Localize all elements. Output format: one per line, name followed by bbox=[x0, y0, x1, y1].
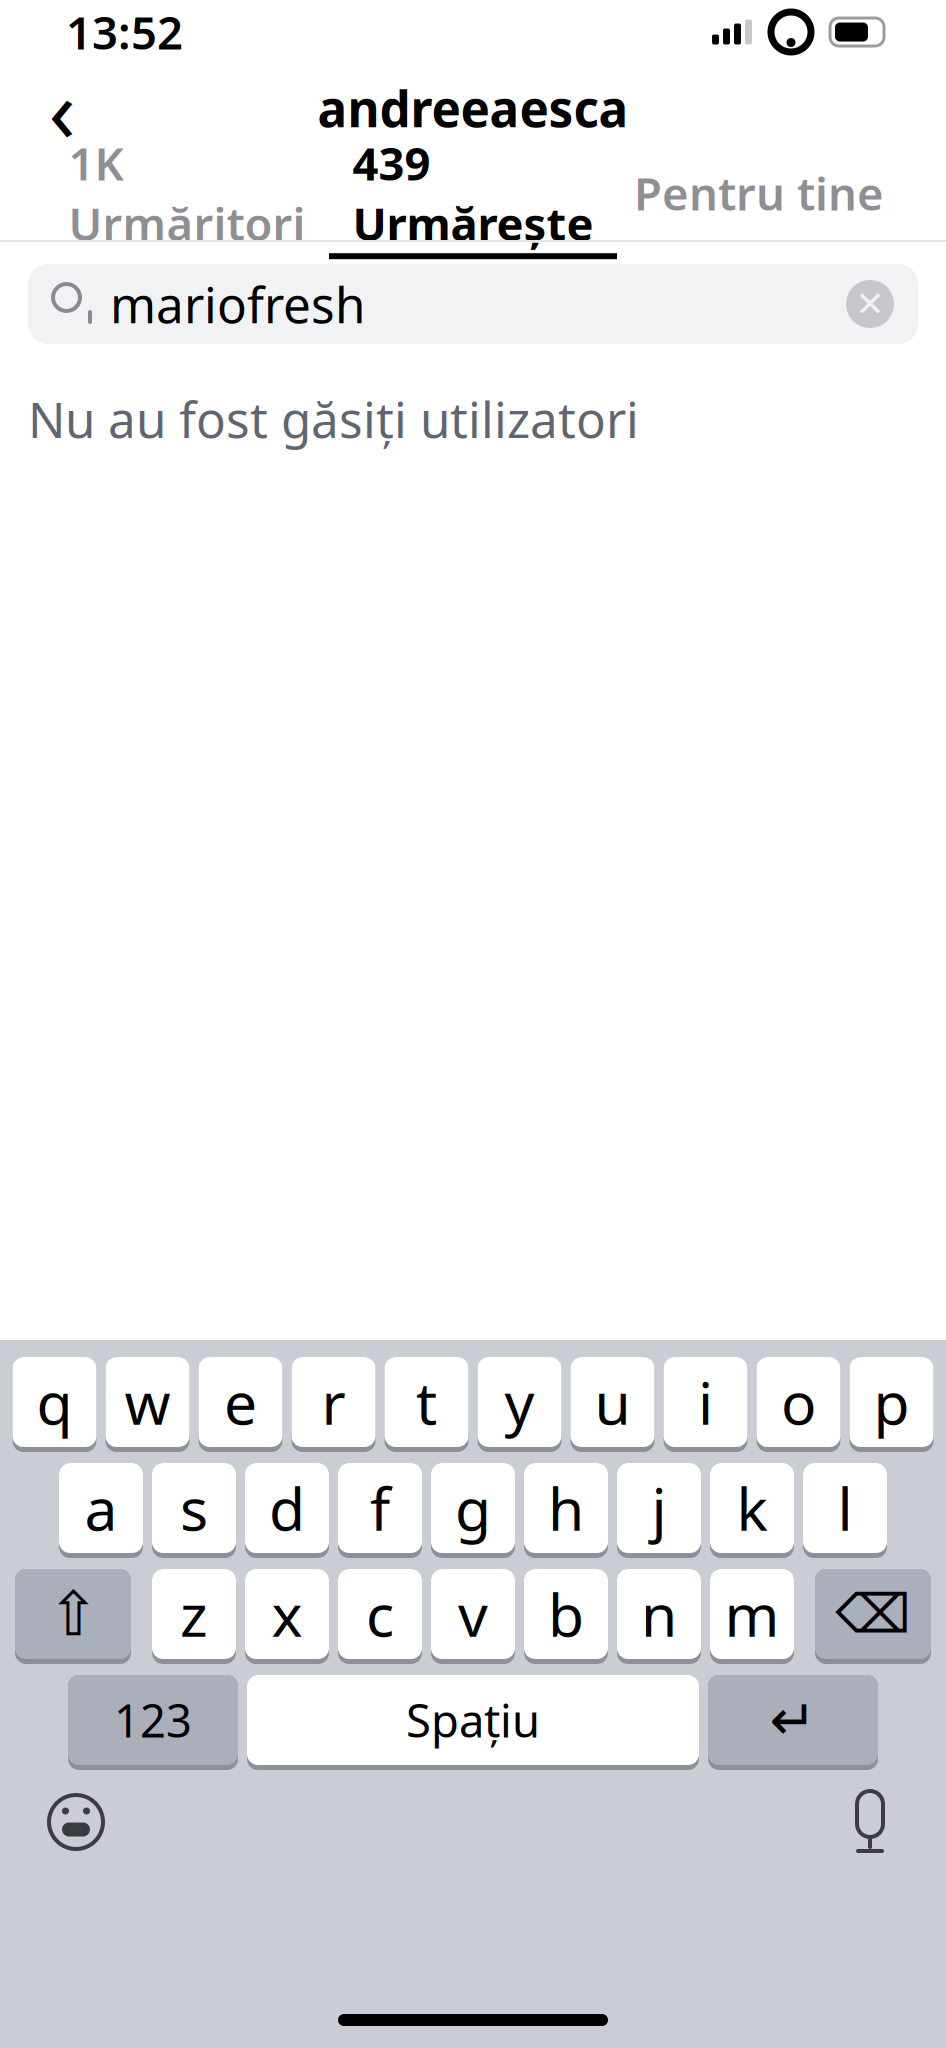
staticText: 1K Urmăritori bbox=[68, 133, 305, 253]
staticText: p bbox=[873, 1363, 909, 1441]
button[interactable]: Numbers bbox=[68, 1675, 238, 1770]
staticText: f bbox=[370, 1469, 390, 1547]
button[interactable]: Delete bbox=[815, 1569, 931, 1664]
button[interactable]: o bbox=[756, 1357, 840, 1452]
button[interactable]: d bbox=[245, 1463, 329, 1558]
staticText: g bbox=[455, 1469, 491, 1547]
button[interactable]: x bbox=[245, 1569, 329, 1664]
button[interactable]: Return bbox=[708, 1675, 878, 1770]
staticText: 13:52 bbox=[66, 2, 183, 62]
staticText: e bbox=[224, 1363, 257, 1441]
staticText: Nu au fost găsiți utilizatori bbox=[28, 386, 639, 451]
staticText: o bbox=[781, 1363, 816, 1441]
staticText: i bbox=[698, 1363, 713, 1441]
staticText: v bbox=[458, 1575, 488, 1653]
button[interactable]: Back bbox=[14, 66, 110, 150]
staticText: mariofresh bbox=[110, 271, 365, 337]
button[interactable]: f bbox=[338, 1463, 422, 1558]
button[interactable]: Dictation bbox=[826, 1778, 914, 1866]
button[interactable]: g bbox=[431, 1463, 515, 1558]
staticText: ✕ bbox=[855, 284, 884, 324]
button[interactable]: s bbox=[152, 1463, 236, 1558]
staticText: t bbox=[416, 1363, 437, 1441]
staticText: ‹ bbox=[48, 50, 75, 166]
button[interactable]: y bbox=[477, 1357, 561, 1452]
button[interactable]: r bbox=[291, 1357, 375, 1452]
staticText: s bbox=[180, 1469, 208, 1547]
staticText: l bbox=[837, 1469, 852, 1547]
button[interactable]: Pentru tine bbox=[617, 152, 901, 240]
button[interactable]: 1K Urmăritori bbox=[45, 152, 329, 240]
staticText: z bbox=[180, 1575, 208, 1653]
staticText: b bbox=[548, 1575, 584, 1653]
staticText: d bbox=[269, 1469, 305, 1547]
button[interactable]: w bbox=[105, 1357, 189, 1452]
button[interactable]: i bbox=[663, 1357, 747, 1452]
staticText: 123 bbox=[114, 1690, 192, 1750]
staticText: c bbox=[366, 1575, 394, 1653]
button[interactable]: a bbox=[59, 1463, 143, 1558]
button[interactable]: Space bbox=[247, 1675, 699, 1770]
button[interactable]: z bbox=[152, 1569, 236, 1664]
button[interactable]: l bbox=[803, 1463, 887, 1558]
button[interactable]: e bbox=[198, 1357, 282, 1452]
button[interactable]: h bbox=[524, 1463, 608, 1558]
button[interactable]: q bbox=[12, 1357, 96, 1452]
staticText: m bbox=[724, 1575, 779, 1653]
staticText: Spațiu bbox=[406, 1690, 540, 1750]
staticText: a bbox=[84, 1469, 117, 1547]
staticText: u bbox=[594, 1363, 630, 1441]
staticText: 439 Urmărește bbox=[352, 133, 593, 253]
button[interactable]: c bbox=[338, 1569, 422, 1664]
button[interactable]: k bbox=[710, 1463, 794, 1558]
button[interactable]: 439 Urmărește bbox=[329, 152, 617, 240]
button[interactable]: t bbox=[384, 1357, 468, 1452]
button[interactable]: j bbox=[617, 1463, 701, 1558]
staticText: Pentru tine bbox=[634, 163, 884, 223]
staticText: n bbox=[641, 1575, 677, 1653]
staticText: andreeaesca bbox=[317, 75, 628, 141]
staticText: j bbox=[651, 1469, 666, 1547]
staticText: k bbox=[736, 1469, 767, 1547]
button[interactable]: Shift bbox=[15, 1569, 131, 1664]
button[interactable]: b bbox=[524, 1569, 608, 1664]
staticText: r bbox=[321, 1363, 345, 1441]
button[interactable]: p bbox=[849, 1357, 933, 1452]
staticText: x bbox=[271, 1575, 302, 1653]
staticText: ⌫ bbox=[835, 1584, 910, 1644]
staticText: ↵ bbox=[769, 1688, 816, 1752]
staticText: q bbox=[36, 1363, 72, 1441]
staticText: ⇧ bbox=[47, 1579, 98, 1649]
staticText: y bbox=[504, 1363, 534, 1441]
button[interactable]: n bbox=[617, 1569, 701, 1664]
staticText: h bbox=[548, 1469, 584, 1547]
button[interactable]: Emoji keyboard bbox=[32, 1778, 120, 1866]
button[interactable]: v bbox=[431, 1569, 515, 1664]
button[interactable]: m bbox=[710, 1569, 794, 1664]
button[interactable]: Clear text bbox=[832, 266, 908, 342]
button[interactable]: u bbox=[570, 1357, 654, 1452]
staticText: w bbox=[124, 1363, 170, 1441]
